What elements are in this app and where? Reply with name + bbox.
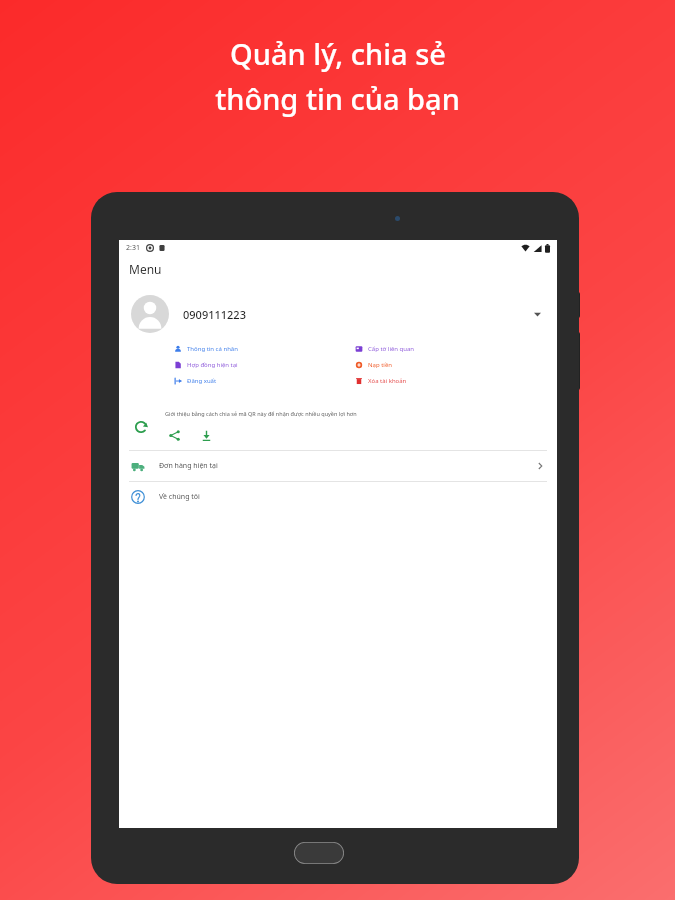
staticText: Menu <box>129 261 162 277</box>
button[interactable]: Về chúng tôi <box>119 482 557 512</box>
staticText: Xóa tài khoản <box>368 377 407 385</box>
staticText: Cấp tờ liên quan <box>368 345 415 353</box>
staticText: Nạp tiền <box>368 361 392 369</box>
button[interactable]: Thông tin cá nhân <box>174 344 355 354</box>
button[interactable]: Đơn hàng hiện tại <box>119 451 557 481</box>
staticText: Quản lý, chia sẻ <box>230 34 446 73</box>
staticText: 0909111223 <box>183 307 246 322</box>
staticText: Hợp đồng hiện tại <box>187 361 238 369</box>
staticText: thông tin của bạn <box>215 79 460 118</box>
staticText: Đăng xuất <box>187 377 217 385</box>
button[interactable]: 0909111223 <box>119 292 557 336</box>
button[interactable]: Share <box>165 426 183 444</box>
button[interactable]: Download <box>197 426 215 444</box>
button[interactable]: Hợp đồng hiện tại <box>174 360 355 370</box>
button[interactable]: Refresh QR code <box>131 417 151 437</box>
button[interactable]: Đăng xuất <box>174 376 355 386</box>
staticText: Về chúng tôi <box>159 492 200 502</box>
button[interactable]: Expand account <box>529 306 545 322</box>
button[interactable]: Xóa tài khoản <box>355 376 537 386</box>
staticText: Giới thiệu bằng cách chia sẻ mã QR này đ… <box>165 410 357 417</box>
staticText: Thông tin cá nhân <box>187 345 238 353</box>
button[interactable]: Nạp tiền <box>355 360 537 370</box>
staticText: 2:31 <box>126 243 140 253</box>
staticText: Đơn hàng hiện tại <box>159 461 218 471</box>
button[interactable]: Cấp tờ liên quan <box>355 344 537 354</box>
